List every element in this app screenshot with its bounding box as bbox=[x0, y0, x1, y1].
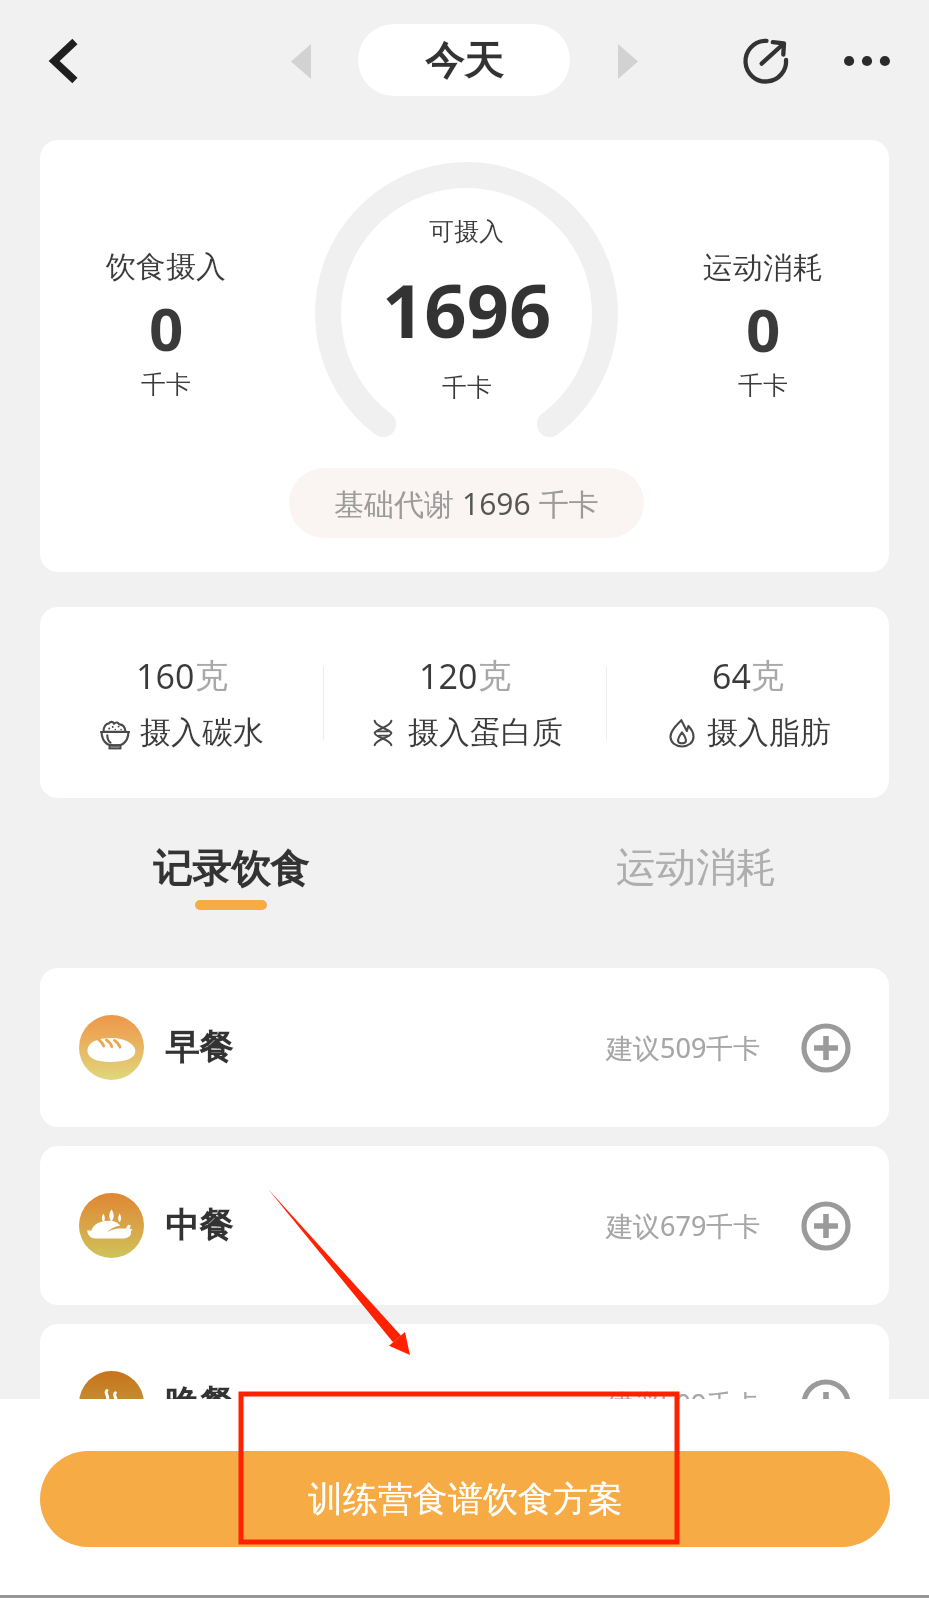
button[interactable]: 120 bbox=[324, 607, 606, 798]
staticText: 克 bbox=[478, 655, 511, 697]
button[interactable]: 160 bbox=[40, 607, 323, 798]
staticText: 摄入蛋白质 bbox=[408, 713, 563, 752]
staticText: 今天 bbox=[425, 36, 503, 85]
staticText: 晚餐 bbox=[165, 1382, 233, 1425]
staticText: 1696 bbox=[382, 259, 552, 360]
button[interactable]: Add food bbox=[801, 1201, 851, 1251]
staticText: 基础代谢 bbox=[334, 483, 462, 524]
staticText: 建议509千卡 bbox=[606, 1029, 761, 1066]
button[interactable]: 今天 bbox=[358, 24, 570, 96]
staticText: 饮食摄入 bbox=[106, 248, 226, 286]
staticText: 训练营食谱饮食方案 bbox=[308, 1477, 623, 1521]
staticText: 可摄入 bbox=[429, 216, 504, 247]
staticText: 千卡 bbox=[531, 483, 599, 524]
staticText: 千卡 bbox=[442, 372, 492, 403]
staticText: 建议679千卡 bbox=[606, 1207, 761, 1244]
staticText: 建议509千卡 bbox=[606, 1385, 761, 1422]
button[interactable]: Add food bbox=[801, 1379, 851, 1429]
button[interactable]: 中餐 bbox=[40, 1146, 889, 1305]
button[interactable]: Back bbox=[24, 21, 104, 101]
button[interactable]: 运动消耗 bbox=[596, 842, 796, 914]
staticText: 早餐 bbox=[165, 1026, 233, 1069]
staticText: 运动消耗 bbox=[703, 249, 823, 287]
button[interactable]: 早餐 bbox=[40, 968, 889, 1127]
staticText: 运动消耗 bbox=[616, 842, 776, 892]
button[interactable]: 晚餐 bbox=[40, 1324, 889, 1483]
staticText: 64 bbox=[712, 653, 751, 699]
staticText: 0 bbox=[746, 288, 781, 370]
staticText: 克 bbox=[751, 655, 784, 697]
button[interactable]: Share bbox=[730, 25, 802, 97]
button[interactable]: 训练营食谱饮食方案 bbox=[40, 1451, 890, 1547]
button[interactable]: Add food bbox=[801, 1023, 851, 1073]
staticText: 0 bbox=[149, 287, 184, 369]
button[interactable]: More options bbox=[831, 25, 903, 97]
button[interactable]: 64 bbox=[607, 607, 889, 798]
staticText: 克 bbox=[195, 655, 228, 697]
staticText: 记录饮食 bbox=[153, 844, 309, 893]
staticText: 中餐 bbox=[165, 1204, 233, 1247]
button[interactable]: Previous day bbox=[268, 28, 334, 94]
button[interactable]: 基础代谢 bbox=[289, 468, 644, 538]
staticText: 千卡 bbox=[738, 370, 788, 401]
staticText: 1696 bbox=[462, 483, 531, 524]
staticText: 160 bbox=[136, 653, 195, 699]
staticText: 摄入碳水 bbox=[140, 713, 264, 752]
button[interactable]: Next day bbox=[595, 28, 661, 94]
staticText: 摄入脂肪 bbox=[707, 713, 831, 752]
staticText: 千卡 bbox=[141, 369, 191, 400]
button[interactable]: 记录饮食 bbox=[131, 844, 331, 910]
staticText: 120 bbox=[419, 653, 478, 699]
